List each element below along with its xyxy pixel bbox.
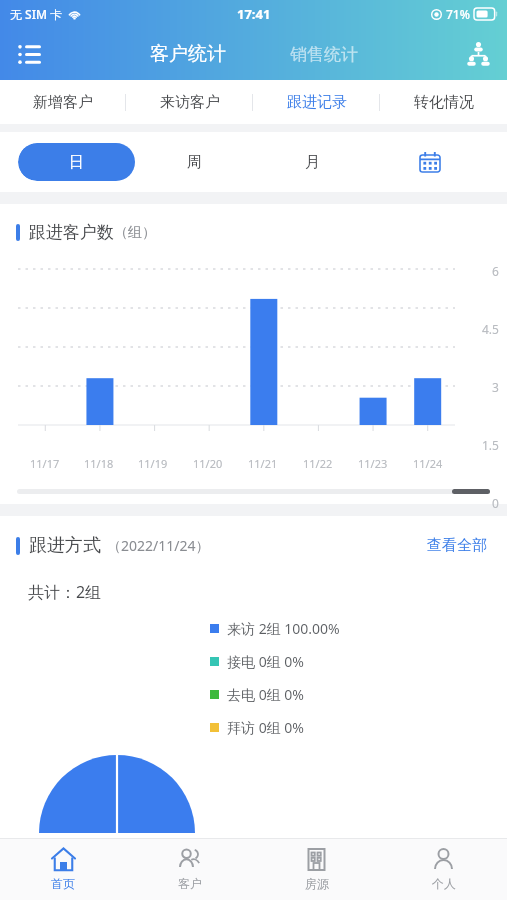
staticText: 11/20	[193, 456, 223, 471]
button[interactable]: 客户	[126, 839, 253, 900]
staticText: 11/23	[358, 456, 388, 471]
button[interactable]: 跟进记录	[253, 80, 380, 124]
button[interactable]: 新增客户	[0, 80, 126, 124]
staticText: 拜访 0组 0%	[227, 718, 304, 737]
staticText: 11/17	[30, 456, 60, 471]
staticText: 0	[492, 495, 499, 511]
button[interactable]: Pick date	[371, 143, 489, 181]
staticText: 个人	[432, 876, 456, 891]
button[interactable]: 查看全部	[423, 532, 491, 559]
staticText: 71%	[446, 6, 470, 22]
button[interactable]: 日	[18, 143, 135, 181]
staticText: 新增客户	[33, 93, 93, 112]
button[interactable]: 个人	[380, 839, 507, 900]
button[interactable]: 转化情况	[380, 80, 507, 124]
staticText: 跟进记录	[287, 93, 347, 112]
staticText: 销售统计	[290, 44, 358, 65]
staticText: 11/24	[413, 456, 443, 471]
staticText: 11/22	[303, 456, 333, 471]
staticText: 跟进客户数	[29, 222, 114, 243]
staticText: 17:41	[237, 5, 271, 23]
button[interactable]: Organization chart	[455, 31, 501, 77]
staticText: 首页	[51, 876, 75, 891]
staticText: 查看全部	[427, 536, 487, 555]
button[interactable]: 销售统计	[280, 38, 368, 71]
staticText: 转化情况	[414, 93, 474, 112]
staticText: （组）	[114, 224, 156, 242]
staticText: 月	[305, 153, 320, 172]
staticText: 共计：2组	[28, 581, 102, 603]
staticText: 3	[492, 379, 499, 395]
staticText: 6	[492, 263, 499, 279]
staticText: 11/18	[84, 456, 114, 471]
staticText: 接电 0组 0%	[227, 652, 304, 671]
button[interactable]: Menu	[6, 31, 52, 77]
staticText: 4.5	[482, 321, 499, 337]
staticText: 11/21	[248, 456, 278, 471]
staticText: 1.5	[482, 437, 499, 453]
staticText: 11/19	[138, 456, 168, 471]
button[interactable]: 来访客户	[126, 80, 253, 124]
staticText: 客户	[178, 876, 202, 891]
button[interactable]: 月	[253, 143, 371, 181]
staticText: 客户统计	[150, 42, 226, 66]
button[interactable]: 首页	[0, 839, 126, 900]
staticText: 来访客户	[160, 93, 220, 112]
staticText: 跟进方式	[29, 534, 101, 557]
staticText: 周	[187, 153, 202, 172]
staticText: 日	[69, 153, 84, 172]
staticText: 去电 0组 0%	[227, 685, 304, 704]
staticText: （2022/11/24）	[107, 536, 210, 555]
button[interactable]: 客户统计	[140, 36, 236, 72]
staticText: 房源	[305, 876, 329, 891]
button[interactable]: 房源	[253, 839, 380, 900]
staticText: 无 SIM 卡	[10, 6, 63, 22]
button[interactable]: 周	[135, 143, 253, 181]
staticText: 来访 2组 100.00%	[227, 619, 340, 638]
